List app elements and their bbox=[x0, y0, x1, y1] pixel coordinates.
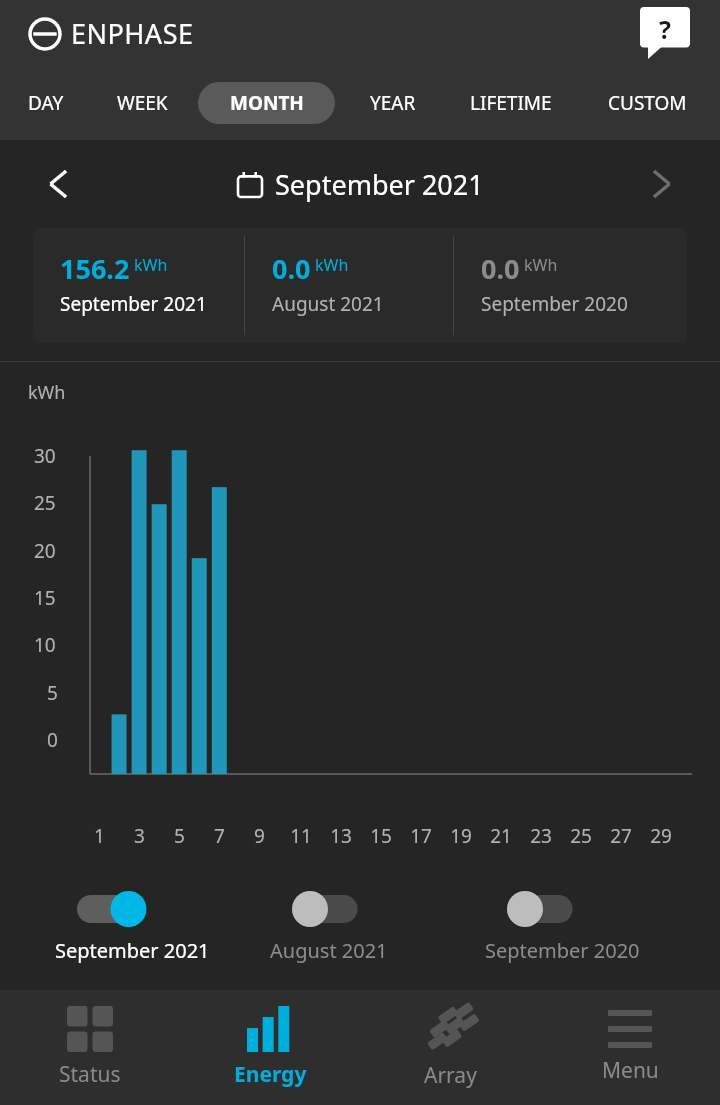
button[interactable]: 156.2 bbox=[33, 228, 687, 343]
staticText: 25 bbox=[570, 823, 592, 849]
button[interactable]: Next bbox=[638, 156, 694, 212]
staticText: August 2021 bbox=[270, 937, 388, 964]
staticText: LIFETIME bbox=[470, 90, 552, 116]
staticText: September 2021 bbox=[55, 937, 210, 964]
staticText: 20 bbox=[34, 538, 56, 564]
staticText: YEAR bbox=[370, 90, 416, 116]
button[interactable]: August 2021 bbox=[270, 891, 485, 964]
staticText: kWh bbox=[315, 254, 349, 276]
staticText: 0.0 bbox=[272, 250, 311, 287]
button[interactable]: Help bbox=[640, 7, 690, 59]
button[interactable]: September 2020 bbox=[485, 891, 700, 964]
staticText: ? bbox=[659, 12, 671, 46]
staticText: 0.0 bbox=[481, 250, 520, 287]
staticText: WEEK bbox=[117, 90, 168, 116]
staticText: MONTH bbox=[230, 90, 304, 116]
staticText: 1 bbox=[94, 823, 105, 849]
button[interactable]: MONTH bbox=[198, 82, 335, 124]
staticText: Array bbox=[424, 1061, 477, 1090]
staticText: Energy bbox=[234, 1060, 307, 1089]
staticText: 0 bbox=[47, 727, 58, 753]
button[interactable]: YEAR bbox=[348, 83, 438, 123]
staticText: 27 bbox=[610, 823, 632, 849]
button[interactable]: DAY bbox=[20, 83, 72, 123]
staticText: 156.2 bbox=[60, 250, 130, 287]
staticText: Menu bbox=[602, 1056, 659, 1085]
staticText: 17 bbox=[410, 823, 432, 849]
staticText: 3 bbox=[134, 823, 145, 849]
staticText: 19 bbox=[450, 823, 472, 849]
staticText: kWh bbox=[524, 254, 558, 276]
button[interactable]: Array bbox=[360, 990, 540, 1105]
staticText: September 2021 bbox=[275, 166, 484, 203]
staticText: 25 bbox=[34, 490, 56, 516]
staticText: 15 bbox=[34, 585, 56, 611]
staticText: 9 bbox=[254, 823, 265, 849]
button[interactable]: Energy bbox=[180, 990, 360, 1105]
staticText: 7 bbox=[214, 823, 225, 849]
staticText: 5 bbox=[47, 680, 58, 706]
staticText: 15 bbox=[370, 823, 392, 849]
button[interactable]: September 2021 bbox=[55, 891, 270, 964]
button[interactable]: CUSTOM bbox=[592, 83, 702, 123]
staticText: 30 bbox=[34, 443, 56, 469]
staticText: 5 bbox=[174, 823, 185, 849]
staticText: September 2021 bbox=[60, 291, 207, 317]
staticText: 29 bbox=[650, 823, 672, 849]
staticText: CUSTOM bbox=[608, 90, 687, 116]
staticText: August 2021 bbox=[272, 291, 384, 317]
staticText: kWh bbox=[28, 380, 66, 405]
staticText: 10 bbox=[34, 632, 56, 658]
button[interactable]: Previous bbox=[26, 156, 82, 212]
button[interactable]: Status bbox=[0, 990, 180, 1105]
staticText: Status bbox=[59, 1060, 121, 1089]
staticText: September 2020 bbox=[481, 291, 628, 317]
staticText: DAY bbox=[28, 90, 64, 116]
staticText: September 2020 bbox=[485, 937, 640, 964]
staticText: 13 bbox=[330, 823, 352, 849]
button[interactable]: WEEK bbox=[98, 83, 186, 123]
button[interactable]: LIFETIME bbox=[450, 83, 572, 123]
staticText: 11 bbox=[290, 823, 312, 849]
staticText: ENPHASE bbox=[71, 15, 194, 52]
staticText: 21 bbox=[490, 823, 512, 849]
staticText: 23 bbox=[530, 823, 552, 849]
button[interactable]: Menu bbox=[540, 990, 720, 1105]
staticText: kWh bbox=[134, 254, 168, 276]
